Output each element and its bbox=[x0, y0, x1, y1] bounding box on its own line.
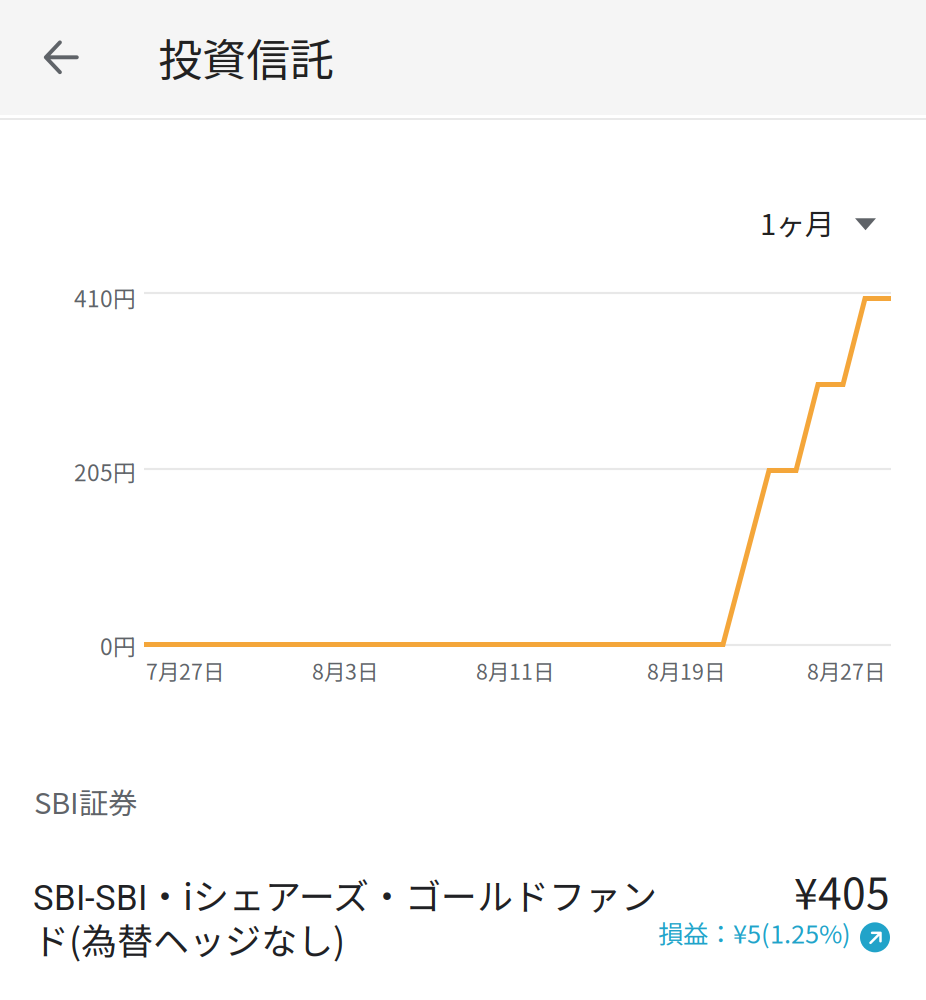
staticText: ¥405 bbox=[794, 860, 890, 922]
staticText: 205円 bbox=[74, 455, 136, 488]
staticText: SBI証券 bbox=[34, 780, 137, 822]
staticText: 8月27日 bbox=[807, 655, 885, 686]
staticText: SBI-SBI・iシェアーズ・ゴールドファン bbox=[33, 869, 657, 920]
staticText: 8月19日 bbox=[647, 655, 725, 686]
staticText: 0円 bbox=[100, 629, 136, 662]
staticText: ド(為替ヘッジなし) bbox=[33, 913, 345, 965]
button[interactable]: 1ヶ月 bbox=[746, 189, 890, 255]
staticText: 1ヶ月 bbox=[760, 201, 834, 243]
staticText: 8月11日 bbox=[476, 655, 554, 686]
staticText: 7月27日 bbox=[146, 655, 224, 686]
staticText: 投資信託 bbox=[158, 25, 334, 89]
button[interactable]: SBI証券 bbox=[0, 760, 926, 1000]
button[interactable]: Back bbox=[15, 0, 107, 115]
staticText: 410円 bbox=[74, 281, 136, 314]
staticText: 損益：¥5(1.25%) bbox=[658, 914, 851, 951]
staticText: 8月3日 bbox=[312, 655, 378, 686]
